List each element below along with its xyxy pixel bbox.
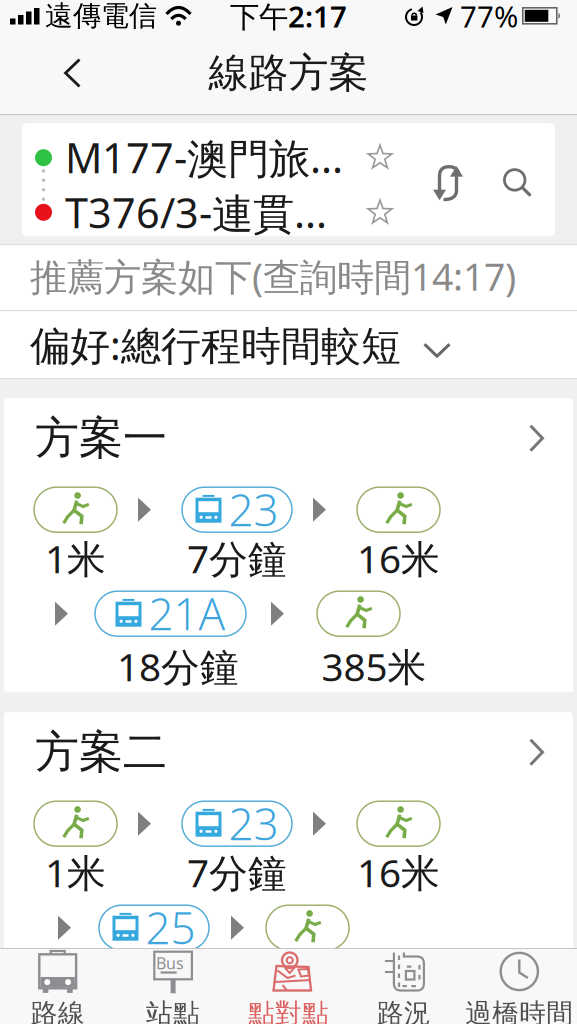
staticText: 過橋時間 (465, 997, 573, 1024)
staticText: 7分鐘 (187, 846, 287, 898)
staticText: 線路方案 (208, 48, 368, 97)
button[interactable]: 搜尋 (503, 168, 555, 197)
staticText: M177-澳門旅... (65, 130, 343, 185)
staticText: 方案一 (35, 411, 167, 465)
staticText: 25 (145, 898, 195, 956)
staticText: T376/3-連貫... (65, 185, 327, 240)
staticText: 16米 (357, 532, 440, 584)
staticText: 站點 (146, 997, 200, 1024)
button[interactable]: 過橋時間 (462, 949, 577, 1024)
staticText: 推薦方案如下(查詢時間14:17) (30, 251, 516, 301)
button[interactable]: 路線 (0, 949, 115, 1024)
button[interactable]: 收藏終點 (367, 199, 393, 226)
staticText: 77% (460, 0, 518, 35)
button[interactable]: 收藏起點 (367, 144, 393, 171)
staticText: 路況 (377, 997, 431, 1024)
button[interactable]: 點對點 (231, 949, 346, 1024)
staticText: 23 (228, 480, 278, 538)
button[interactable]: Bus (115, 949, 231, 1024)
button[interactable]: 偏好:總行程時間較短 (0, 311, 577, 378)
staticText: 23 (228, 794, 278, 852)
staticText: 路線 (31, 997, 85, 1024)
button[interactable]: 方案二 (4, 712, 573, 992)
staticText: 偏好:總行程時間較短 (30, 318, 401, 371)
staticText: 點對點 (248, 997, 329, 1024)
staticText: 21A (148, 584, 225, 642)
staticText: 16米 (357, 846, 440, 898)
staticText: 下午2:17 (230, 0, 347, 35)
staticText: 1米 (45, 532, 106, 584)
button[interactable]: 方案一 (4, 398, 573, 692)
staticText: 7分鐘 (187, 532, 287, 584)
staticText: 1米 (45, 846, 106, 898)
staticText: Bus (156, 952, 184, 974)
staticText: 遠傳電信 (45, 0, 157, 33)
staticText: 18分鐘 (117, 640, 239, 692)
button[interactable]: 交換起終點 (430, 162, 466, 204)
button[interactable]: 路況 (346, 949, 462, 1024)
staticText: 方案二 (35, 725, 167, 779)
button[interactable]: Back (0, 48, 101, 98)
staticText: 385米 (321, 640, 426, 692)
